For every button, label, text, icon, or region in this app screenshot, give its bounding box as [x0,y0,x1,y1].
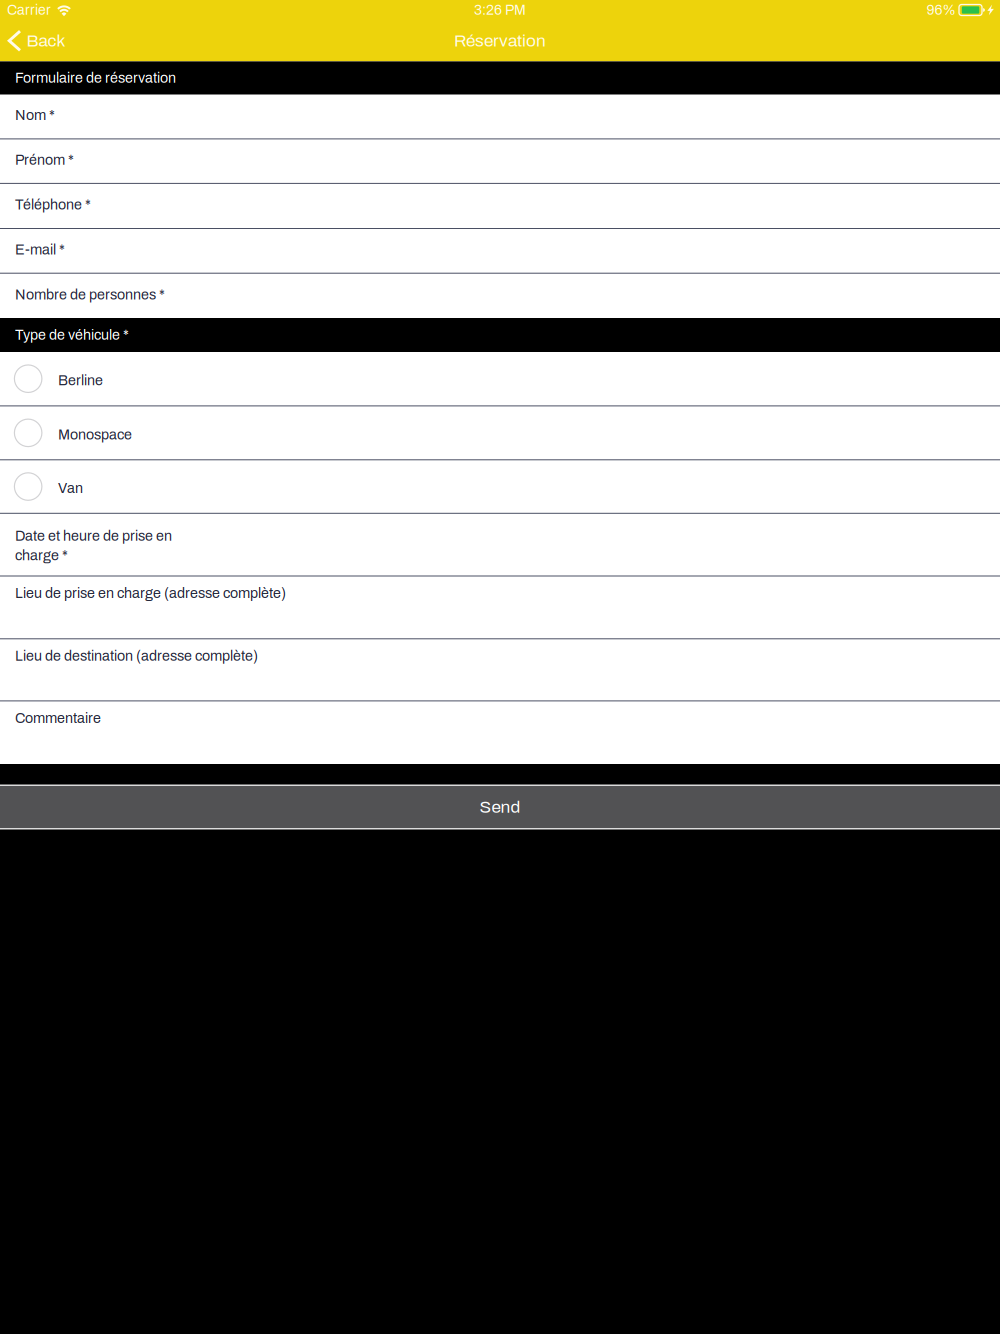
staticText: Send [479,798,520,816]
button[interactable]: Berline [0,352,1000,406]
staticText: Berline [58,373,103,388]
staticText: Back [26,31,65,50]
button[interactable]: Date et heure de prise en charge * [0,514,1000,576]
button[interactable]: Nombre de personnes * [0,274,1000,318]
button[interactable]: Lieu de destination (adresse complète) [0,639,1000,701]
button[interactable]: Téléphone * [0,184,1000,229]
staticText: Prénom * [15,152,74,168]
staticText: Réservation [454,31,546,50]
staticText: Lieu de destination (adresse complète) [15,648,258,664]
staticText: Commentaire [15,710,101,726]
button[interactable]: Commentaire [0,701,1000,764]
staticText: E-mail * [15,242,65,257]
button[interactable]: Van [0,460,1000,514]
staticText: Van [58,481,83,496]
staticText: Nombre de personnes * [15,287,165,302]
staticText: Formulaire de réservation [15,70,176,86]
button[interactable]: E-mail * [0,229,1000,274]
button[interactable]: Prénom * [0,139,1000,184]
button[interactable]: Back [0,20,77,61]
staticText: Carrier [7,2,51,18]
button[interactable]: Lieu de prise en charge (adresse complèt… [0,576,1000,639]
staticText: Nom * [15,107,55,123]
staticText: Type de véhicule * [15,327,129,343]
staticText: Monospace [58,427,132,442]
staticText: 96% [926,2,955,18]
staticText: 3:26 PM [474,2,526,18]
staticText: Téléphone * [15,197,91,212]
button[interactable]: Nom * [0,94,1000,139]
staticText: Date et heure de prise en charge * [15,528,172,563]
staticText: Lieu de prise en charge (adresse complèt… [15,585,286,601]
button[interactable]: Send [0,784,1000,829]
button[interactable]: Monospace [0,406,1000,460]
